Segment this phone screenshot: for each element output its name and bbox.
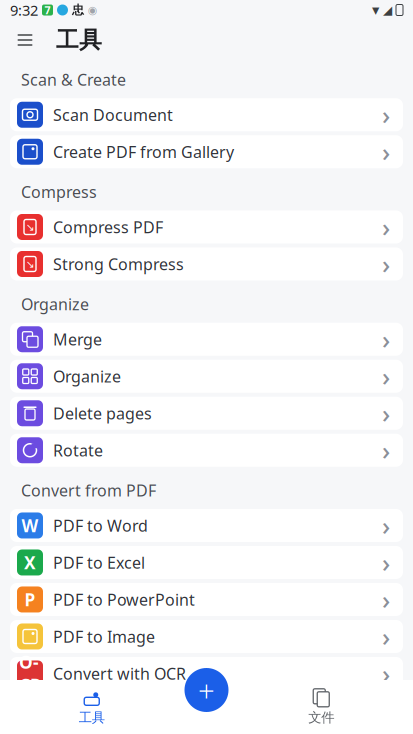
staticText: ↘: [25, 258, 34, 270]
button[interactable]: ↘: [10, 210, 403, 243]
staticText: Scan & Create: [21, 69, 126, 90]
staticText: P: [24, 588, 35, 611]
button[interactable]: 文件: [241, 688, 401, 726]
staticText: PDF to Excel: [53, 552, 145, 573]
staticText: ›: [382, 135, 390, 168]
staticText: OCR: [19, 650, 41, 696]
staticText: 9:32: [10, 0, 38, 20]
staticText: ›: [382, 359, 390, 393]
button[interactable]: Organize: [10, 360, 403, 393]
button[interactable]: Scan Document: [10, 98, 403, 131]
staticText: Convert to PDF: [21, 703, 135, 724]
button[interactable]: PDF to Image: [10, 620, 403, 653]
button[interactable]: Menu: [8, 23, 42, 57]
staticText: ›: [382, 620, 390, 653]
staticText: ›: [382, 210, 390, 244]
staticText: Organize: [53, 366, 121, 387]
staticText: ›: [382, 546, 390, 579]
staticText: +: [198, 670, 215, 709]
button[interactable]: Create: [184, 668, 228, 712]
staticText: ›: [382, 509, 390, 542]
staticText: W: [21, 514, 38, 537]
staticText: 忠: [72, 3, 84, 17]
staticText: 7: [44, 3, 50, 17]
staticText: Rotate: [53, 440, 103, 461]
staticText: ›: [382, 322, 390, 356]
staticText: Scan Document: [53, 104, 173, 125]
staticText: ›: [382, 433, 390, 467]
staticText: Compress PDF: [53, 216, 163, 238]
staticText: PDF to Image: [53, 626, 155, 647]
button[interactable]: ↘: [10, 247, 403, 280]
staticText: Merge: [53, 329, 102, 350]
staticText: ›: [382, 657, 390, 690]
staticText: X: [24, 551, 36, 574]
button[interactable]: 工具: [12, 688, 171, 726]
staticText: Delete pages: [53, 403, 152, 424]
staticText: 文件: [308, 709, 334, 726]
button[interactable]: Delete pages: [10, 397, 403, 430]
staticText: ◉: [88, 4, 97, 16]
staticText: 工具: [79, 709, 105, 726]
staticText: Organize: [21, 293, 89, 315]
staticText: 工具: [56, 26, 102, 54]
staticText: ◢: [383, 3, 392, 17]
button[interactable]: Rotate: [10, 434, 403, 467]
staticText: ›: [382, 583, 390, 616]
staticText: PDF to PowerPoint: [53, 589, 195, 610]
staticText: ›: [382, 247, 390, 281]
button[interactable]: P: [10, 583, 403, 616]
button[interactable]: X: [10, 546, 403, 579]
button[interactable]: W: [10, 509, 403, 542]
button[interactable]: Merge: [10, 323, 403, 356]
staticText: Strong Compress: [53, 253, 184, 275]
staticText: Compress: [21, 181, 97, 202]
staticText: ▾: [372, 2, 379, 18]
staticText: Convert from PDF: [21, 480, 156, 501]
staticText: PDF to Word: [53, 515, 148, 536]
button[interactable]: OCR: [10, 657, 403, 690]
staticText: Convert with OCR: [53, 663, 186, 684]
staticText: Create PDF from Gallery: [53, 141, 234, 162]
staticText: ›: [382, 98, 390, 131]
staticText: ›: [382, 396, 390, 430]
button[interactable]: Create PDF from Gallery: [10, 135, 403, 168]
staticText: ↘: [25, 221, 34, 233]
